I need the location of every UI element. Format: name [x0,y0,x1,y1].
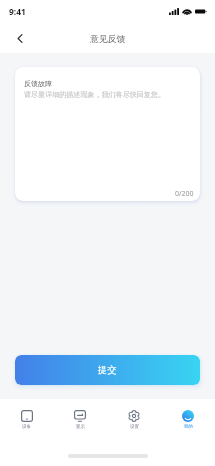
button[interactable]: 设备 [0,410,53,430]
staticText: 意见反馈 [90,34,126,45]
staticText: 显示 [76,424,85,430]
button[interactable]: 设置 [107,410,161,430]
staticText: 反馈故障 [24,79,52,88]
staticText: 我的 [184,424,193,430]
button[interactable]: Back [0,23,40,53]
button[interactable]: 显示 [53,410,107,430]
button[interactable]: 提交 [15,355,200,385]
staticText: 设置 [130,424,139,430]
staticText: 提交 [98,364,117,376]
staticText: 请尽量详细的描述现象，我们将尽快回复您。 [24,90,165,99]
button[interactable]: 我的 [161,410,215,430]
staticText: 9:41 [9,6,26,17]
staticText: 设备 [22,424,31,430]
staticText: 0/200 [175,189,194,199]
